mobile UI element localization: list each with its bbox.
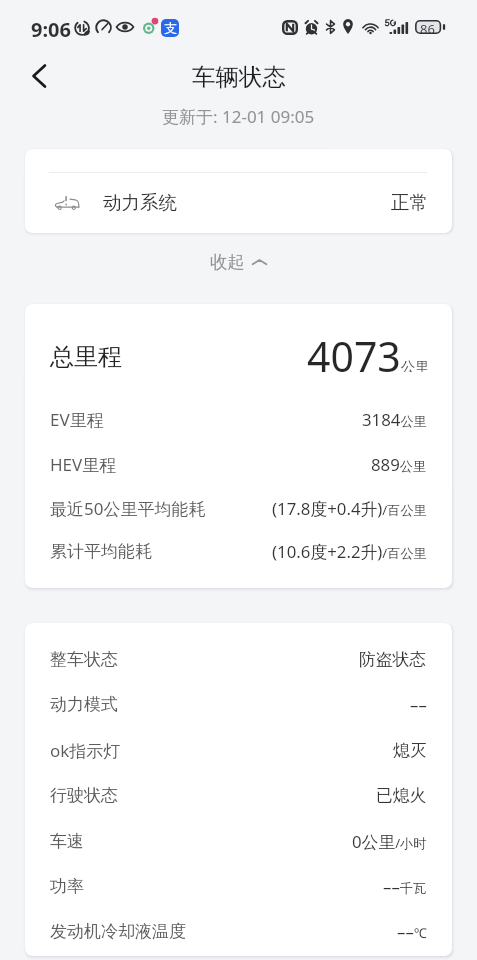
button[interactable]: 行驶状态 — [25, 783, 452, 807]
staticText: 已熄火 — [376, 785, 427, 806]
staticText: –– — [410, 693, 427, 716]
staticText: 熄灭 — [393, 740, 427, 761]
button[interactable]: 功率 — [25, 874, 452, 898]
staticText: 最近50公里平均能耗 — [50, 497, 206, 520]
button[interactable]: 动力模式 — [25, 692, 452, 716]
button[interactable]: 车速 — [25, 829, 452, 853]
staticText: 整车状态 — [50, 649, 118, 670]
staticText: 3184公里 — [362, 408, 427, 431]
staticText: 9:06 — [31, 16, 71, 43]
staticText: 4073公里 — [307, 328, 430, 372]
staticText: 动力系统 — [103, 191, 177, 214]
staticText: 功率 — [50, 876, 84, 897]
staticText: 累计平均能耗 — [50, 541, 152, 562]
staticText: 车速 — [50, 831, 84, 852]
button[interactable]: HEV里程 — [25, 452, 452, 476]
button[interactable]: 收起 — [0, 245, 477, 279]
staticText: (10.6度+2.2升)/百公里 — [272, 540, 427, 563]
staticText: 总里程 — [50, 342, 122, 372]
staticText: 889公里 — [371, 453, 427, 476]
staticText: 防盗状态 — [359, 649, 427, 670]
staticText: 正常 — [391, 191, 428, 214]
staticText: 更新于: 12-01 09:05 — [162, 105, 315, 128]
button[interactable]: 最近50公里平均能耗 — [25, 496, 452, 520]
staticText: 支 — [164, 20, 177, 36]
staticText: 车辆状态 — [192, 62, 286, 92]
staticText: 86 — [420, 20, 435, 38]
button[interactable]: EV里程 — [25, 407, 452, 431]
button[interactable]: 动力系统 — [49, 172, 428, 233]
staticText: 动力模式 — [50, 694, 118, 715]
staticText: ––℃ — [397, 920, 427, 943]
staticText: EV里程 — [50, 408, 104, 431]
staticText: 0公里/小时 — [352, 830, 427, 853]
staticText: 行驶状态 — [50, 785, 118, 806]
button[interactable]: 累计平均能耗 — [25, 539, 452, 563]
staticText: 收起 — [210, 251, 245, 273]
staticText: ok指示灯 — [50, 739, 121, 762]
staticText: ––千瓦 — [383, 875, 427, 898]
staticText: HEV里程 — [50, 453, 117, 476]
button[interactable]: ok指示灯 — [25, 738, 452, 762]
button[interactable]: Back — [22, 58, 58, 94]
staticText: (17.8度+0.4升)/百公里 — [272, 497, 427, 520]
button[interactable]: 整车状态 — [25, 647, 452, 671]
button[interactable]: 发动机冷却液温度 — [25, 919, 452, 943]
staticText: 发动机冷却液温度 — [50, 921, 186, 942]
